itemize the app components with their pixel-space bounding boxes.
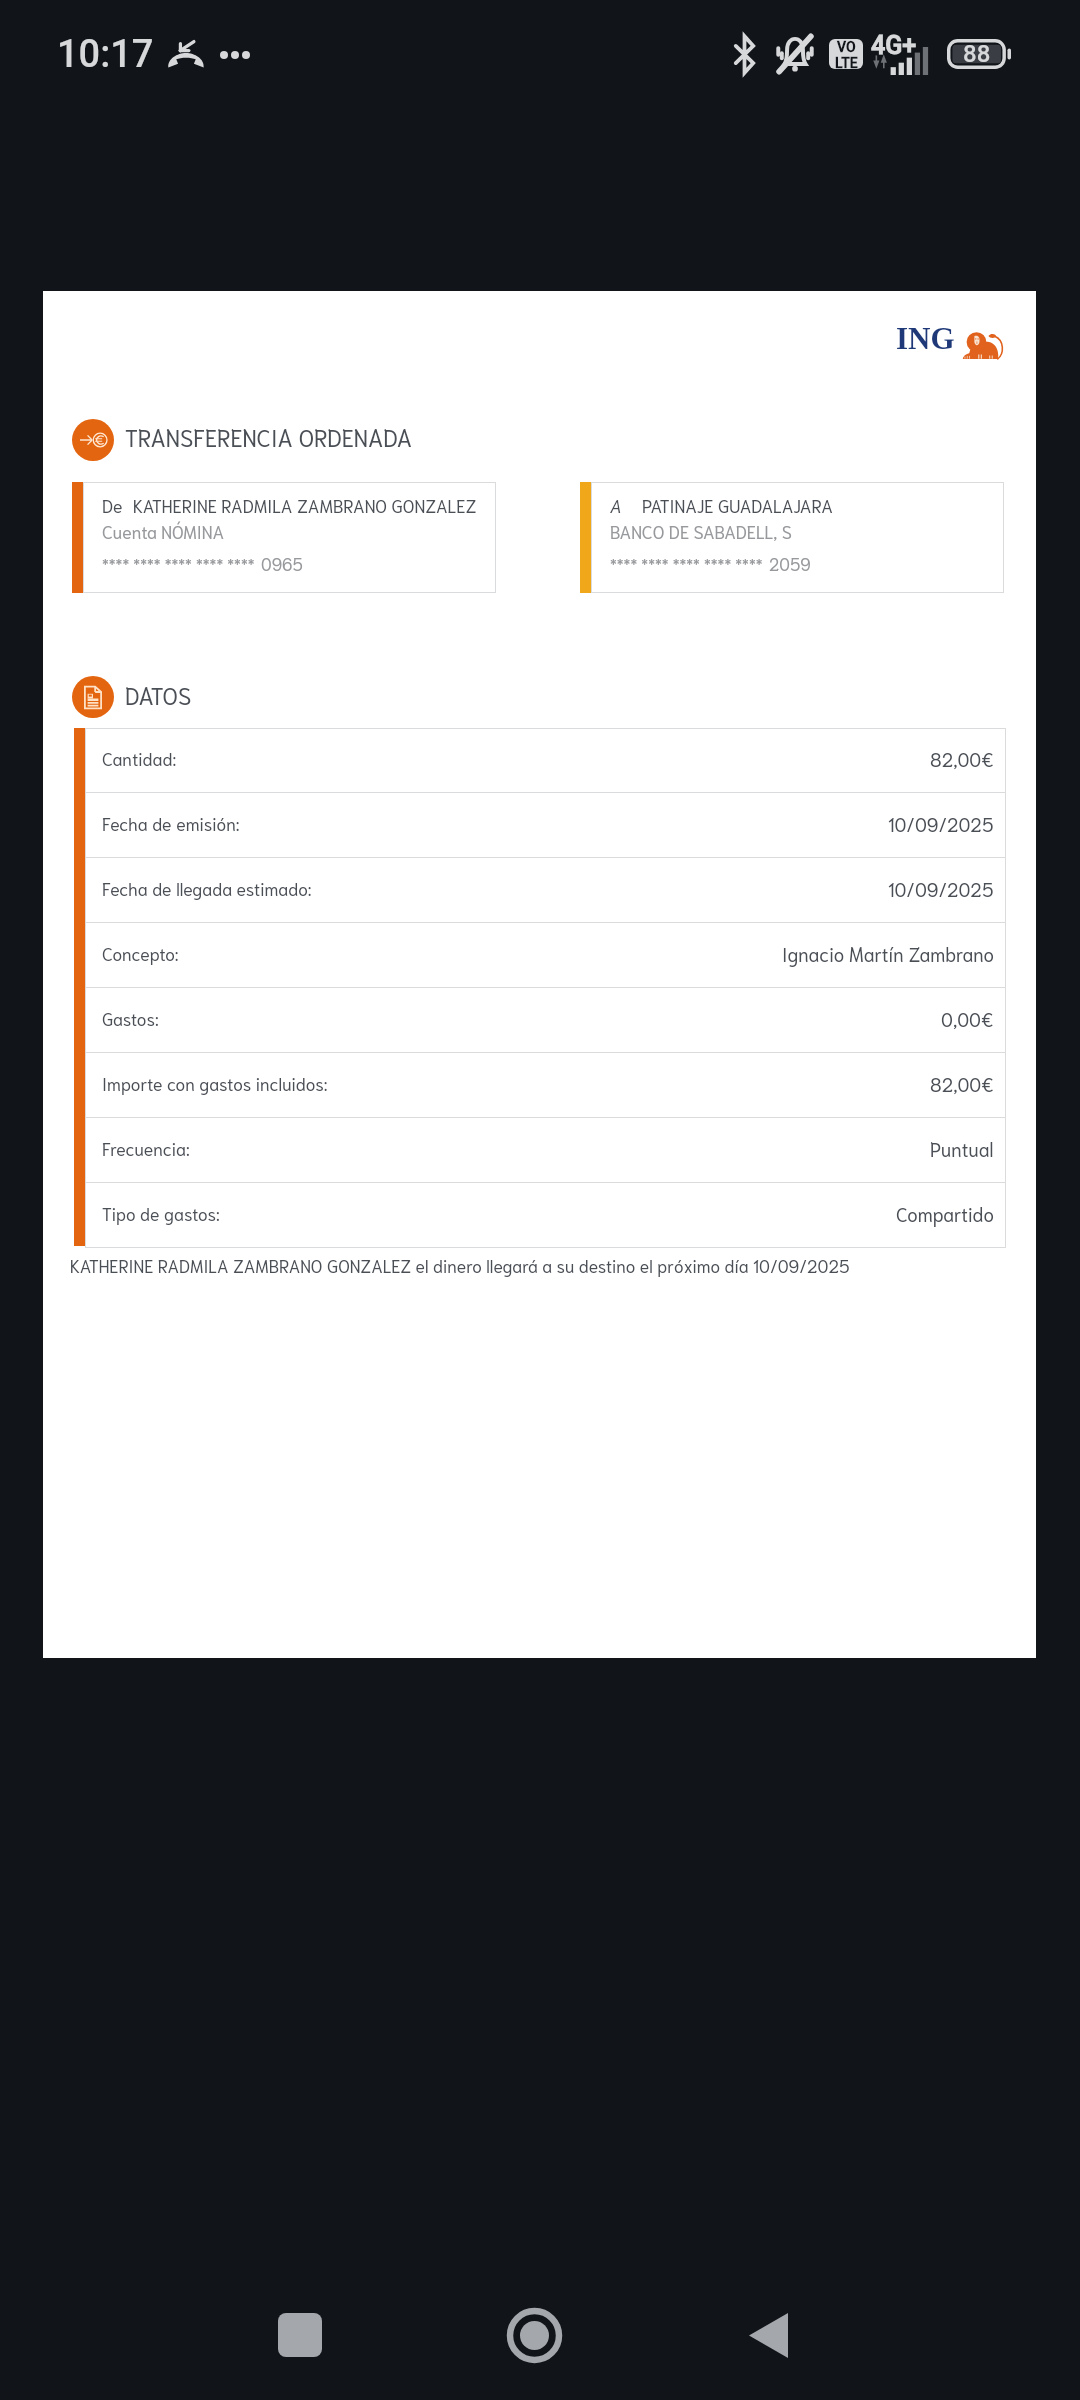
button[interactable]: Concepto: [85,923,1006,988]
staticText: Cuenta NÓMINA [102,520,225,543]
staticText: ING [896,321,955,355]
staticText: KATHERINE RADMILA ZAMBRANO GONZALEZ [133,494,477,517]
button[interactable]: Tipo de gastos: [85,1183,1006,1248]
staticText: **** **** **** **** **** [610,553,763,574]
button[interactable]: Recent apps [240,2275,360,2395]
staticText: BANCO DE SABADELL, S [610,520,792,543]
staticText: KATHERINE RADMILA ZAMBRANO GONZALEZ el d… [70,1254,1020,1277]
staticText: Tipo de gastos: [102,1202,220,1225]
staticText: TRANSFERENCIA ORDENADA [125,422,412,452]
staticText: Compartido [896,1201,994,1226]
button[interactable]: Cantidad: [85,728,1006,793]
staticText: Frecuencia: [102,1137,190,1160]
button[interactable]: Fecha de emisión: [85,793,1006,858]
staticText: 10/09/2025 [888,876,994,901]
staticText: 0,00€ [941,1006,994,1031]
button[interactable]: De [72,482,496,593]
other: Transfer [72,419,114,461]
staticText: 4G+ [871,31,917,60]
staticText: 0965 [261,552,303,574]
staticText: LTE [835,55,858,69]
staticText: **** **** **** **** **** [102,553,255,574]
button[interactable]: Back [712,2275,832,2395]
other: Details [72,676,114,718]
staticText: Fecha de emisión: [102,812,240,835]
button[interactable]: Fecha de llegada estimado: [85,858,1006,923]
staticText: 10:17 [57,32,154,77]
staticText: Importe con gastos incluidos: [102,1072,328,1095]
staticText: VO [837,39,856,55]
staticText: A [610,494,622,517]
staticText: DATOS [125,680,192,710]
staticText: Concepto: [102,942,179,965]
button[interactable]: Importe con gastos incluidos: [85,1053,1006,1118]
staticText: De [102,494,123,517]
staticText: Fecha de llegada estimado: [102,877,312,900]
staticText: 88 [963,40,991,68]
staticText: Gastos: [102,1007,159,1030]
staticText: 2059 [769,552,811,574]
button[interactable]: Gastos: [85,988,1006,1053]
staticText: 82,00€ [930,746,994,771]
staticText: Ignacio Martín Zambrano [782,941,994,966]
staticText: 82,00€ [930,1071,994,1096]
staticText: Puntual [930,1136,994,1161]
button[interactable]: A [580,482,1004,593]
button[interactable]: Home [474,2275,594,2395]
staticText: PATINAJE GUADALAJARA [642,494,833,517]
button[interactable]: Frecuencia: [85,1118,1006,1183]
staticText: Cantidad: [102,747,177,770]
staticText: 10/09/2025 [888,811,994,836]
